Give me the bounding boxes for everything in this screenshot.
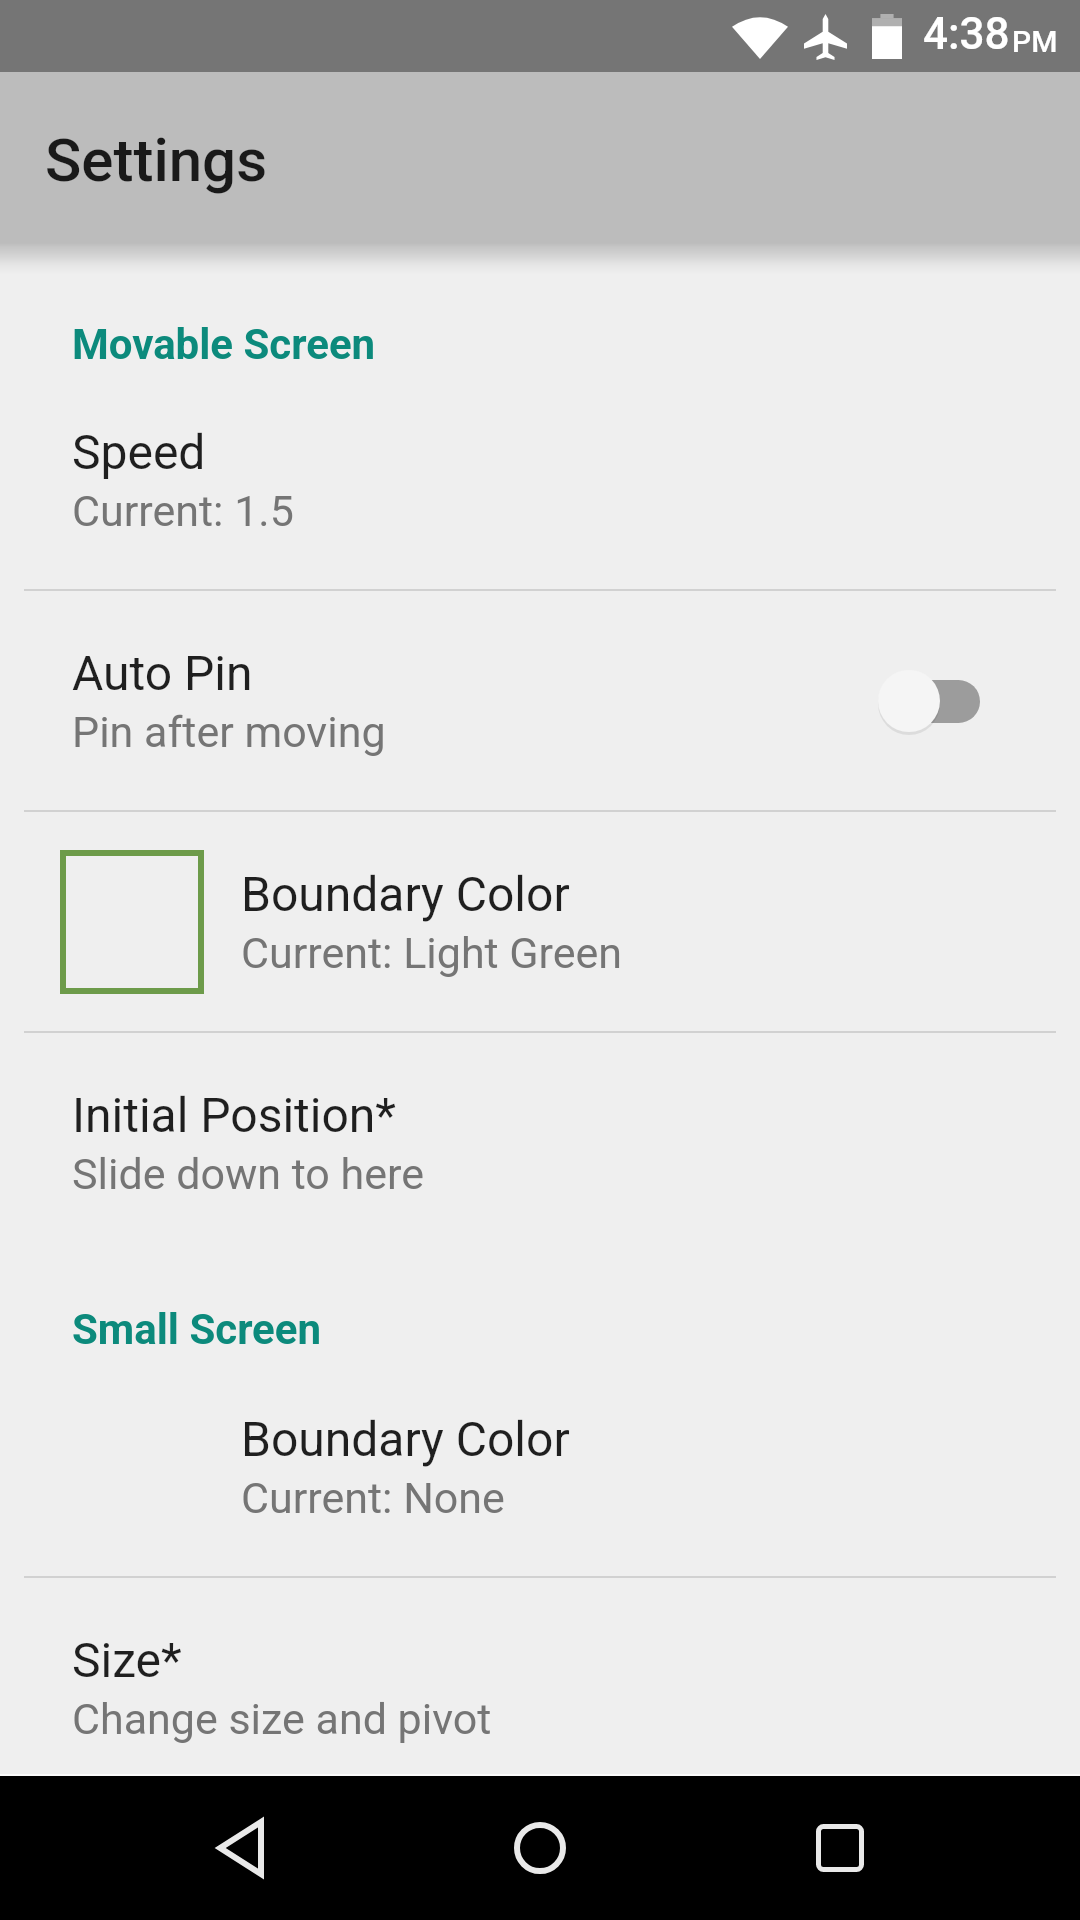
staticText: Auto Pin <box>72 645 253 701</box>
button[interactable]: Size* <box>0 1578 1080 1797</box>
button[interactable]: Initial Position* <box>0 1033 1080 1252</box>
staticText: Boundary Color <box>241 866 570 922</box>
staticText: Change size and pivot <box>72 1694 492 1744</box>
other: Wi-Fi <box>732 13 788 59</box>
button[interactable]: Auto Pin toggle, off <box>877 653 1008 749</box>
staticText: 4:38 <box>923 8 1010 60</box>
staticText: Slide down to here <box>72 1149 424 1199</box>
staticText: Settings <box>45 125 268 195</box>
button[interactable]: Boundary Color <box>0 1357 1080 1576</box>
staticText: Movable Screen <box>72 320 376 369</box>
staticText: Size* <box>72 1632 182 1688</box>
button[interactable]: Home <box>468 1776 612 1920</box>
staticText: PM <box>1012 24 1058 59</box>
button[interactable]: Auto Pin <box>0 591 1080 810</box>
staticText: Initial Position* <box>72 1087 397 1143</box>
button[interactable]: Speed <box>0 370 1080 589</box>
staticText: Current: 1.5 <box>72 486 294 536</box>
staticText: Current: None <box>241 1473 505 1523</box>
other: Battery <box>872 14 902 59</box>
button[interactable]: Recent apps <box>768 1776 912 1920</box>
staticText: Small Screen <box>72 1305 322 1354</box>
button[interactable]: Boundary Color <box>0 812 1080 1031</box>
button[interactable]: Back <box>168 1776 312 1920</box>
staticText: Current: Light Green <box>241 928 623 978</box>
staticText: Pin after moving <box>72 707 386 757</box>
other: Airplane mode <box>804 13 847 60</box>
staticText: Speed <box>72 424 206 480</box>
staticText: Boundary Color <box>241 1411 570 1467</box>
